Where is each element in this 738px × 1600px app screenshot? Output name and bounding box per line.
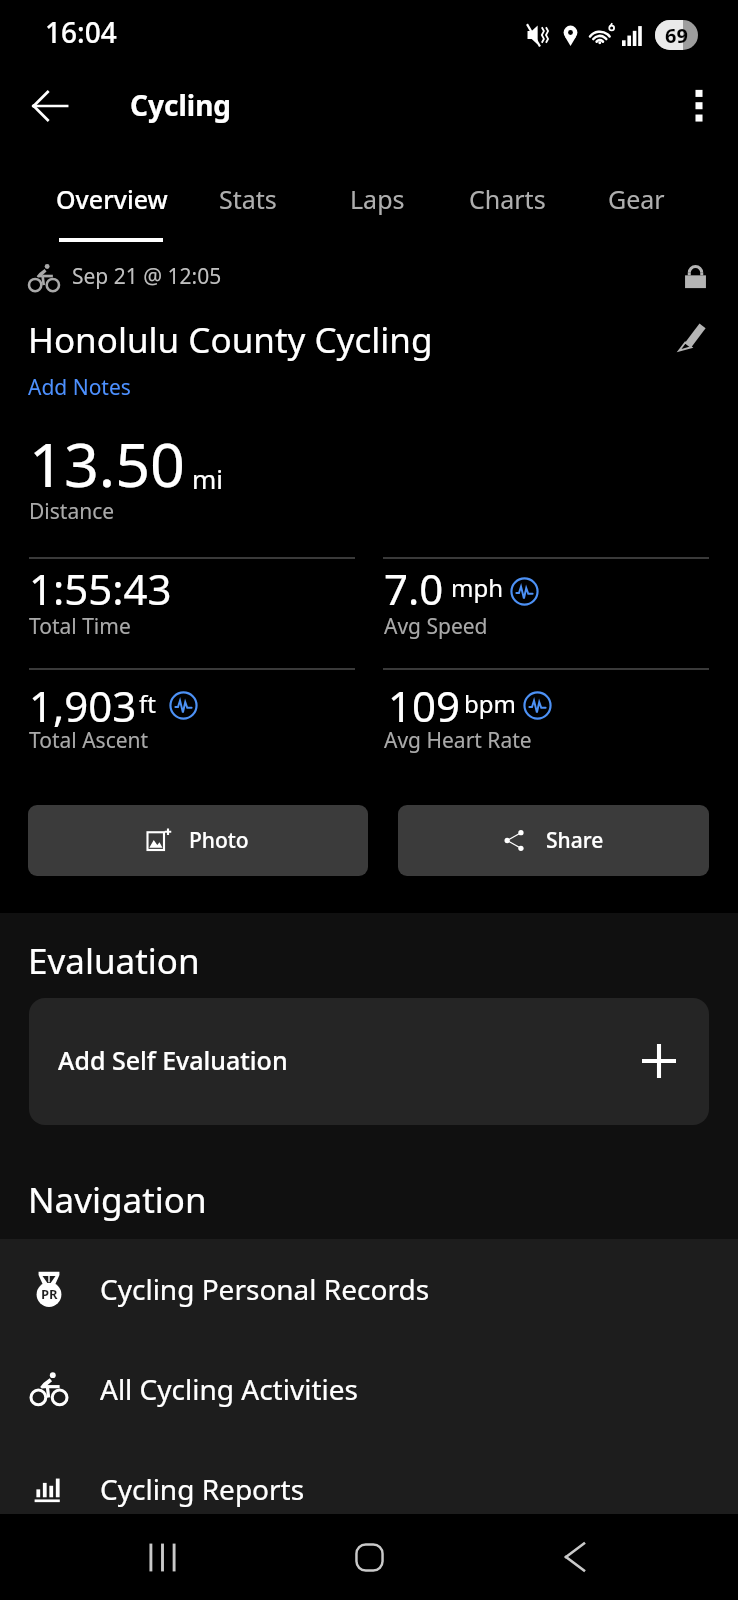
button[interactable]: Photo: [28, 805, 368, 876]
staticText: Share: [546, 826, 604, 855]
button[interactable]: Add Notes: [28, 373, 131, 402]
button[interactable]: PR: [0, 1239, 738, 1339]
button[interactable]: Share: [398, 805, 709, 876]
staticText: Evaluation: [28, 937, 200, 985]
staticText: 16:04: [45, 13, 117, 51]
staticText: Add Self Evaluation: [58, 1043, 288, 1077]
staticText: Laps: [350, 182, 405, 216]
staticText: Photo: [189, 826, 249, 855]
staticText: Navigation: [28, 1176, 207, 1224]
button[interactable]: Add Self Evaluation: [29, 998, 709, 1125]
button[interactable]: All Cycling Activities: [0, 1339, 738, 1439]
staticText: Charts: [469, 182, 546, 216]
staticText: 1,903: [29, 677, 137, 734]
button[interactable]: Gear: [572, 162, 700, 238]
staticText: Cycling Personal Records: [100, 1270, 430, 1308]
staticText: mi: [192, 461, 224, 496]
button[interactable]: Overview: [48, 162, 176, 238]
button[interactable]: Edit name: [663, 306, 721, 364]
staticText: Distance: [29, 497, 115, 526]
staticText: Honolulu County Cycling: [28, 316, 433, 364]
button[interactable]: More options: [667, 71, 731, 135]
button[interactable]: Recent apps: [112, 1514, 212, 1600]
staticText: Avg Heart Rate: [384, 726, 532, 755]
staticText: Overview: [56, 182, 168, 216]
staticText: All Cycling Activities: [100, 1370, 358, 1408]
staticText: 109: [388, 677, 461, 734]
staticText: Avg Speed: [384, 612, 488, 641]
staticText: Sep 21 @ 12:05: [72, 262, 222, 291]
staticText: mph: [451, 571, 504, 604]
staticText: ft: [139, 687, 156, 720]
staticText: Total Time: [29, 612, 131, 641]
staticText: Cycling: [130, 86, 232, 124]
staticText: 13.50: [29, 422, 185, 505]
button[interactable]: Cycling Reports: [0, 1439, 738, 1539]
button[interactable]: Laps: [313, 162, 441, 238]
staticText: 7.0: [384, 560, 444, 617]
staticText: Gear: [608, 182, 665, 216]
button[interactable]: Private activity: [672, 253, 718, 299]
staticText: Stats: [219, 182, 277, 216]
button[interactable]: Back: [18, 74, 82, 138]
staticText: Cycling Reports: [100, 1470, 305, 1508]
staticText: Total Ascent: [29, 726, 149, 755]
button[interactable]: Charts: [443, 162, 571, 238]
button[interactable]: Stats: [184, 162, 312, 238]
staticText: 69: [665, 22, 688, 49]
button[interactable]: Back: [525, 1514, 625, 1600]
staticText: 1:55:43: [29, 560, 172, 617]
staticText: PR: [41, 1285, 58, 1303]
staticText: bpm: [464, 687, 516, 720]
button[interactable]: Home: [319, 1514, 419, 1600]
